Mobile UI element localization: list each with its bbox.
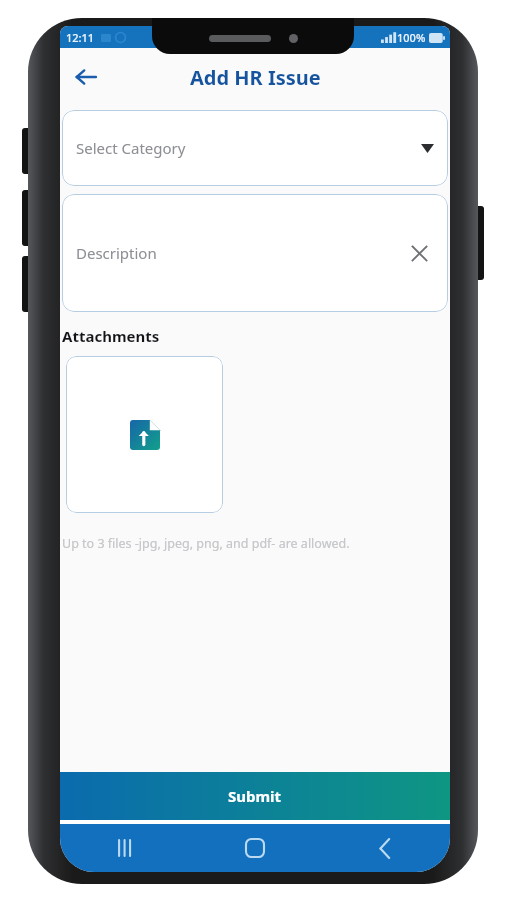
button[interactable]: Recent apps xyxy=(60,824,190,872)
staticText: 100% xyxy=(397,30,426,45)
staticText: 12:11 xyxy=(66,30,95,45)
staticText: Add HR Issue xyxy=(190,64,321,91)
button[interactable]: Submit xyxy=(60,772,450,820)
staticText: Submit xyxy=(228,786,282,806)
button[interactable]: Back xyxy=(64,55,108,99)
button[interactable]: Description xyxy=(62,194,448,312)
staticText: Up to 3 files -jpg, jpeg, png, and pdf- … xyxy=(62,535,350,552)
button[interactable]: Back xyxy=(320,824,450,872)
staticText: Description xyxy=(76,243,157,263)
button[interactable]: Clear description xyxy=(404,238,434,268)
button[interactable]: Add attachment xyxy=(66,356,223,513)
button[interactable]: Select Category xyxy=(62,110,448,186)
staticText: Select Category xyxy=(76,138,186,158)
staticText: Attachments xyxy=(62,326,160,346)
button[interactable]: Home xyxy=(190,824,320,872)
